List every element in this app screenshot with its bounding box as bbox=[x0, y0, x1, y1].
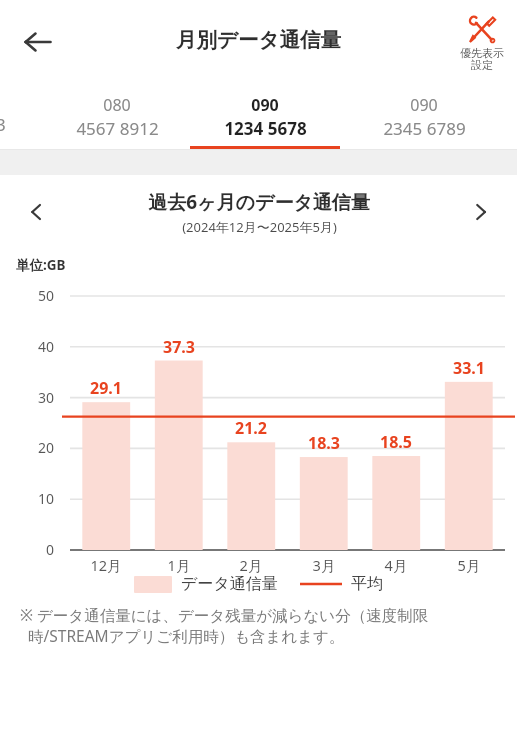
staticText: 平均 bbox=[351, 574, 383, 594]
staticText: 4月 bbox=[361, 555, 431, 575]
staticText: 1月 bbox=[144, 555, 214, 575]
button[interactable]: 090 bbox=[186, 90, 344, 144]
button[interactable]: 090 bbox=[345, 90, 503, 144]
staticText: 時/STREAMアプリご利用時）も含まれます。 bbox=[20, 625, 497, 646]
staticText: 33.1 bbox=[434, 357, 504, 379]
staticText: ※ データ通信量には、データ残量が減らない分（速度制限 bbox=[20, 604, 497, 625]
button[interactable]: 優先表示設定 bbox=[447, 11, 517, 73]
staticText: 090 bbox=[410, 94, 438, 116]
button[interactable]: 次の期間 bbox=[459, 190, 503, 234]
staticText: 18.3 bbox=[289, 432, 359, 454]
staticText: 4567 8912 bbox=[76, 117, 159, 140]
staticText: 40 bbox=[0, 337, 54, 356]
staticText: 10 bbox=[0, 489, 54, 508]
staticText: 3 bbox=[0, 113, 6, 136]
staticText: 12月 bbox=[71, 555, 141, 575]
staticText: 単位:GB bbox=[16, 256, 66, 274]
staticText: 0 bbox=[0, 540, 54, 559]
staticText: 月別データ通信量 bbox=[176, 27, 341, 53]
staticText: 29.1 bbox=[71, 377, 141, 399]
staticText: 20 bbox=[0, 438, 54, 457]
button[interactable]: Back bbox=[10, 15, 64, 69]
staticText: 18.5 bbox=[361, 431, 431, 453]
button[interactable]: 前の期間 bbox=[14, 190, 58, 234]
staticText: 3月 bbox=[289, 555, 359, 575]
staticText: 21.2 bbox=[216, 417, 286, 439]
staticText: (2024年12月〜2025年5月) bbox=[182, 218, 337, 236]
other: 優先表示設定 bbox=[467, 15, 497, 45]
staticText: 080 bbox=[103, 94, 131, 116]
staticText: 50 bbox=[0, 286, 54, 305]
staticText: 2345 6789 bbox=[383, 117, 466, 140]
staticText: 1234 5678 bbox=[224, 117, 307, 140]
staticText: 優先表示 設定 bbox=[447, 46, 517, 73]
staticText: データ通信量 bbox=[181, 574, 278, 594]
staticText: 37.3 bbox=[144, 336, 214, 358]
staticText: 5月 bbox=[434, 555, 504, 575]
staticText: 090 bbox=[251, 94, 279, 116]
button[interactable]: 080 bbox=[38, 90, 196, 144]
staticText: 30 bbox=[0, 388, 54, 407]
staticText: 2月 bbox=[216, 555, 286, 575]
staticText: 過去6ヶ月のデータ通信量 bbox=[148, 189, 370, 215]
